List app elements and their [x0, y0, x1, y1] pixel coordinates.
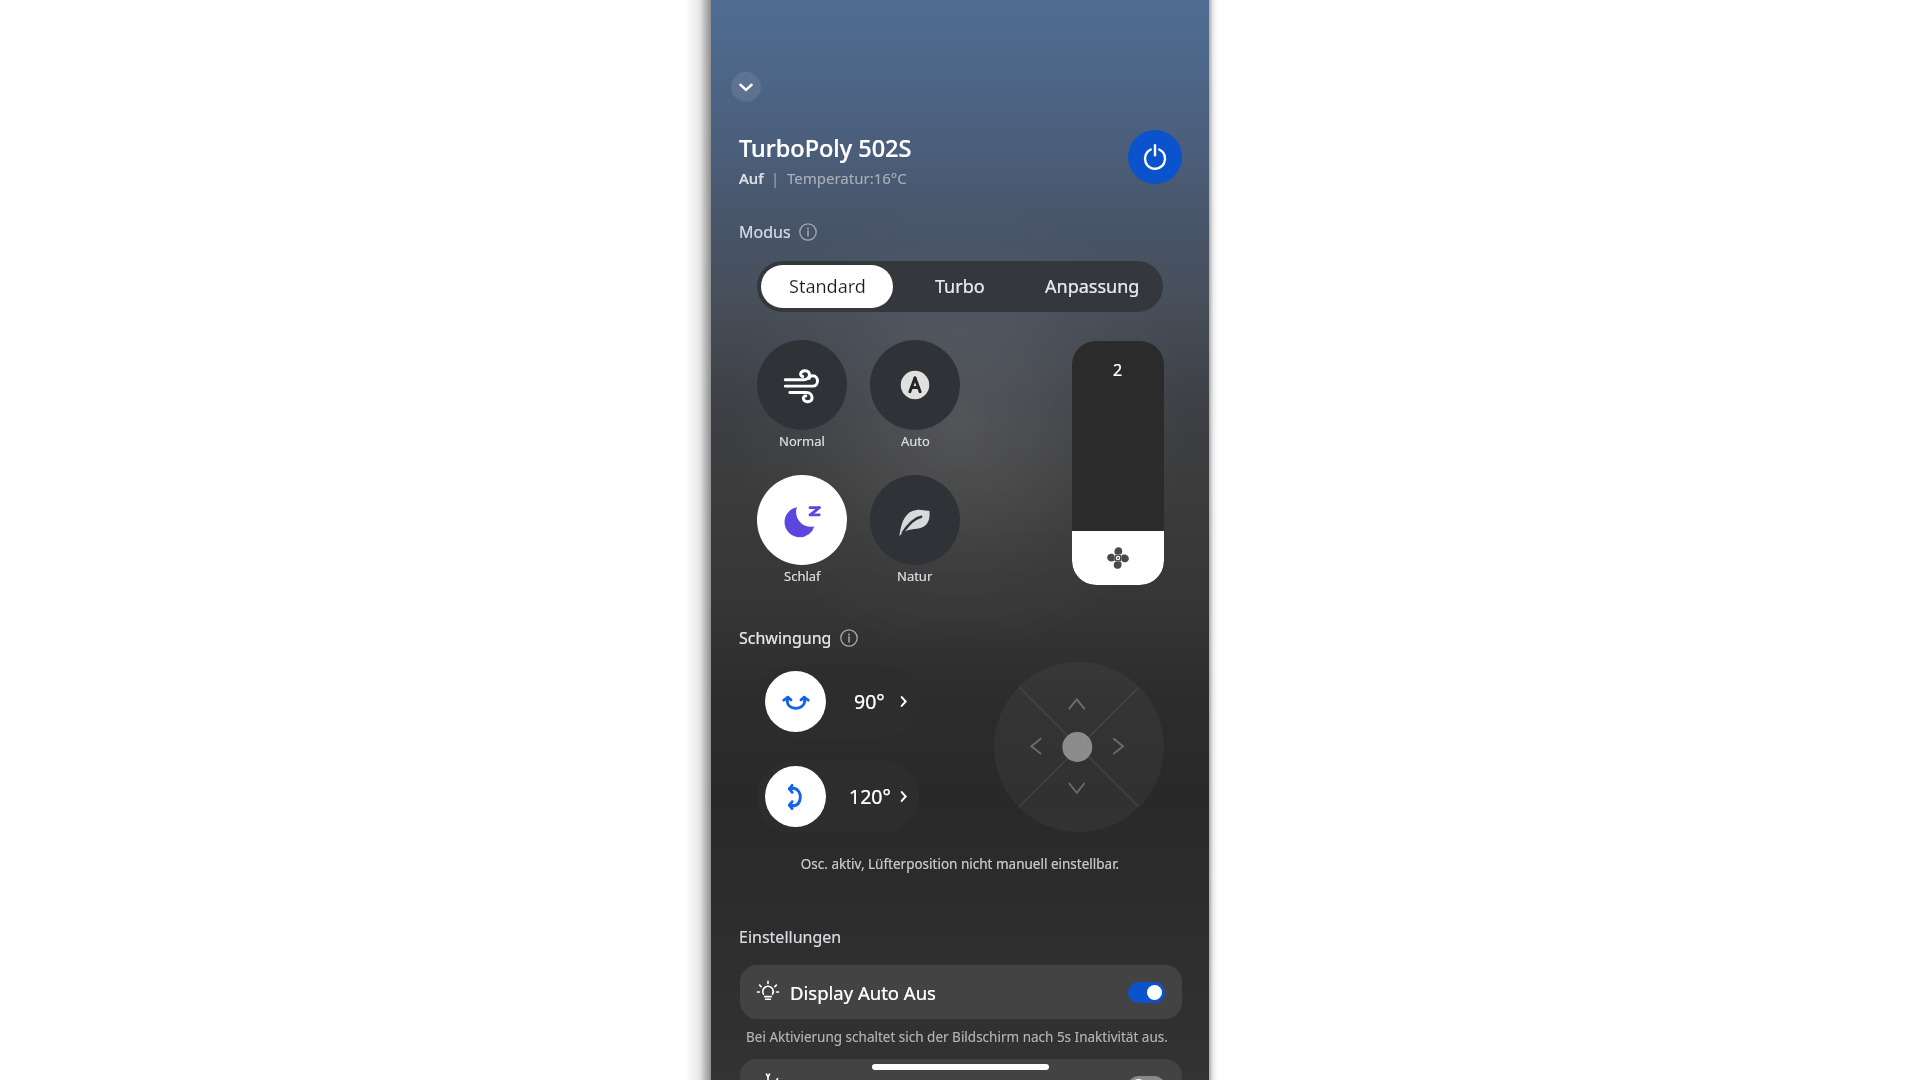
- staticText: 120°: [849, 783, 891, 810]
- staticText: Osc. aktiv, Lüfterposition nicht manuell…: [711, 855, 1209, 873]
- button[interactable]: Collapse: [731, 72, 761, 102]
- button[interactable]: 90°: [757, 665, 919, 738]
- staticText: 90°: [854, 688, 885, 715]
- staticText: Natur: [897, 567, 933, 585]
- staticText: Normal: [779, 432, 825, 450]
- staticText: Auf: [739, 168, 764, 188]
- button[interactable]: [870, 340, 960, 430]
- staticText: Display Auto Aus: [790, 980, 1128, 1005]
- button[interactable]: Display Auto Aus: [740, 965, 1182, 1019]
- staticText: Schwingung: [739, 627, 832, 649]
- staticText: Standard: [789, 274, 866, 299]
- staticText: Schlaf: [784, 567, 821, 585]
- staticText: Anpassung: [1045, 274, 1140, 299]
- button[interactable]: Power: [1128, 130, 1182, 184]
- staticText: 2: [1113, 359, 1123, 381]
- staticText: Turbo: [935, 274, 985, 299]
- staticText: Auto: [901, 432, 930, 450]
- button[interactable]: Turbo: [893, 265, 1026, 308]
- button[interactable]: Direction pad: [994, 662, 1164, 832]
- staticText: Modus: [739, 221, 791, 243]
- button[interactable]: [757, 340, 847, 430]
- staticText: TurboPoly 502S: [739, 132, 912, 164]
- button[interactable]: [870, 475, 960, 565]
- staticText: |: [764, 169, 787, 188]
- staticText: Einstellungen: [739, 926, 842, 948]
- button[interactable]: [757, 475, 847, 565]
- staticText: Bei Aktivierung schaltet sich der Bildsc…: [746, 1028, 1168, 1046]
- staticText: Temperatur:16°C: [787, 168, 907, 188]
- button[interactable]: Anpassung: [1026, 265, 1159, 308]
- button[interactable]: Standard: [761, 265, 893, 308]
- button[interactable]: 120°: [757, 760, 919, 833]
- button[interactable]: Bedienfeldkühlung: [740, 1059, 1182, 1080]
- button[interactable]: Fan speed: [1072, 341, 1164, 585]
